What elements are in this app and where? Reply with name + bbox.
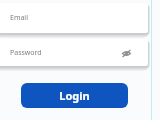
staticText: Email: [10, 13, 28, 23]
button[interactable]: Email: [0, 3, 148, 33]
button[interactable]: Show password: [120, 47, 132, 59]
staticText: Login: [59, 88, 90, 103]
button[interactable]: Login: [21, 83, 128, 108]
button[interactable]: Password: [0, 39, 148, 66]
staticText: Password: [10, 48, 42, 58]
